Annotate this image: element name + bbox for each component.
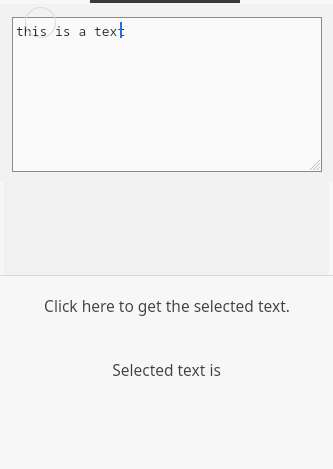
staticText: Click here to get the selected text. (44, 295, 290, 316)
button[interactable]: Text input field (12, 17, 322, 172)
staticText: Selected text is (112, 359, 221, 380)
button[interactable]: Click here to get the selected text. (0, 276, 333, 334)
staticText: this is a text (16, 22, 126, 40)
